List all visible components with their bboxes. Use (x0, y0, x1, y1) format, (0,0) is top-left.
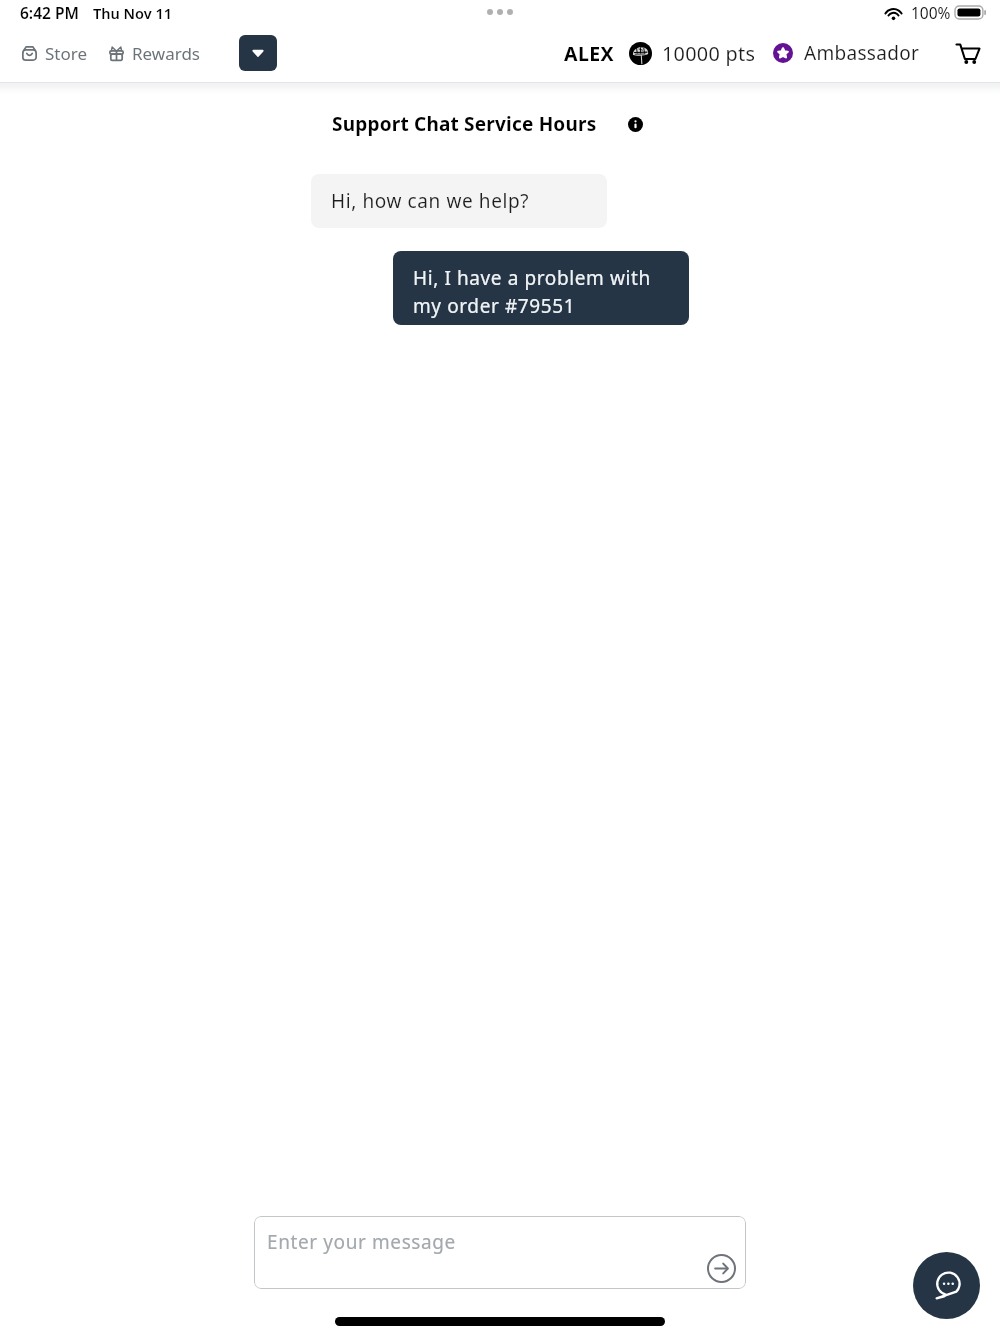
staticText: Enter your message (267, 1229, 456, 1255)
staticText: Thu Nov 11 (93, 3, 172, 23)
button[interactable]: Shopping cart (950, 35, 986, 71)
button[interactable]: Enter your message (254, 1216, 746, 1289)
button[interactable]: Store (14, 36, 96, 71)
staticText: 10000 pts (662, 40, 756, 67)
staticText: 6:42 PM (20, 2, 79, 23)
button[interactable]: Rewards (101, 36, 208, 71)
button[interactable]: Expand account menu (239, 35, 277, 71)
staticText: 100% (911, 2, 951, 23)
staticText: Store (45, 42, 88, 65)
staticText: Rewards (132, 42, 200, 65)
button[interactable]: Send message (707, 1254, 736, 1283)
staticText: Support Chat Service Hours (332, 111, 597, 137)
staticText: Hi, I have a problem with my order #7955… (413, 265, 669, 318)
staticText: Ambassador (804, 40, 920, 66)
staticText: ALEX (564, 40, 614, 67)
staticText: Hi, how can we help? (331, 188, 530, 214)
button[interactable]: Information (624, 113, 646, 135)
button[interactable]: Open support chat (913, 1252, 980, 1319)
